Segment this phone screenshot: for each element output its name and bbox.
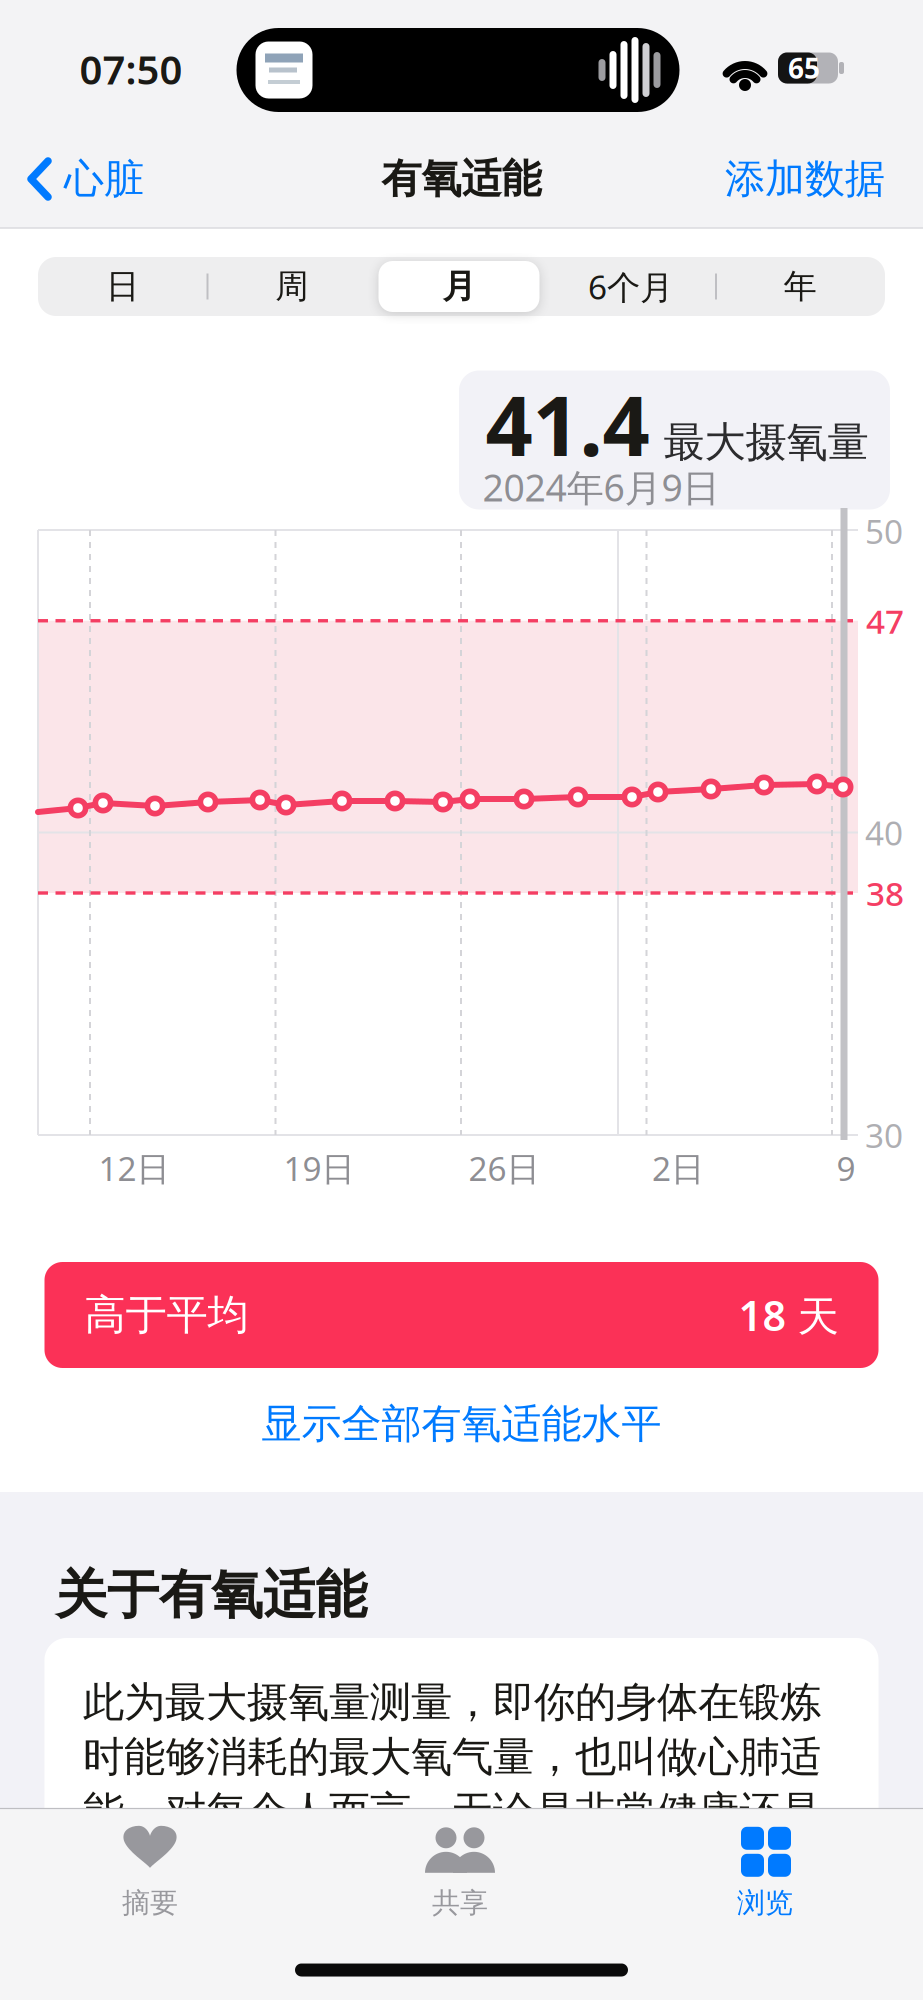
button[interactable]: 摘要: [122, 1826, 178, 1920]
button[interactable]: 显示全部有氧适能水平: [261, 1399, 661, 1448]
staticText: 摘要: [122, 1886, 178, 1920]
staticText: 65: [788, 49, 820, 87]
staticText: 周: [275, 266, 308, 307]
staticText: 2024年6月9日: [482, 462, 719, 512]
staticText: 47: [866, 599, 904, 643]
button[interactable]: 高于平均: [44, 1262, 878, 1368]
staticText: 显示全部有氧适能水平: [261, 1399, 661, 1448]
staticText: 最大摄氧量: [663, 417, 868, 468]
staticText: 心脏: [64, 154, 144, 203]
staticText: 30: [865, 1113, 903, 1157]
staticText: 50: [865, 509, 903, 553]
button[interactable]: 年: [717, 257, 882, 316]
staticText: 此为最大摄氧量测量，即你的身体在锻炼: [83, 1677, 821, 1728]
staticText: 07:50: [79, 42, 182, 95]
staticText: 41.4: [485, 369, 649, 479]
staticText: 38: [866, 871, 904, 915]
staticText: 9: [836, 1146, 855, 1190]
staticText: 能，对每个人而言，无论是非常健康还是: [83, 1786, 821, 1837]
staticText: 添加数据: [725, 154, 885, 203]
staticText: 月: [442, 266, 475, 307]
staticText: 6个月: [588, 264, 673, 309]
staticText: 日: [106, 266, 139, 307]
staticText: 40: [865, 810, 903, 855]
staticText: 关于有氧适能: [55, 1563, 367, 1627]
staticText: 2日: [652, 1146, 704, 1190]
button[interactable]: 日: [40, 257, 205, 316]
button[interactable]: 月: [376, 257, 541, 316]
staticText: 年: [783, 266, 816, 307]
staticText: 时能够消耗的最大氧气量，也叫做心肺适: [83, 1732, 821, 1782]
button[interactable]: 添加数据: [725, 154, 885, 203]
button[interactable]: 6个月: [548, 257, 713, 316]
staticText: 19日: [283, 1146, 354, 1190]
button[interactable]: 周: [209, 257, 374, 316]
staticText: 浏览: [737, 1886, 793, 1920]
staticText: 18 天: [738, 1288, 838, 1342]
staticText: 12日: [98, 1146, 169, 1190]
button[interactable]: 浏览: [737, 1826, 793, 1920]
button[interactable]: 返回 心脏: [28, 154, 144, 203]
staticText: 26日: [468, 1146, 539, 1190]
staticText: 共享: [432, 1886, 488, 1920]
staticText: 有氧适能: [381, 154, 541, 203]
button[interactable]: 共享: [427, 1826, 493, 1920]
staticText: 高于平均: [84, 1290, 248, 1340]
